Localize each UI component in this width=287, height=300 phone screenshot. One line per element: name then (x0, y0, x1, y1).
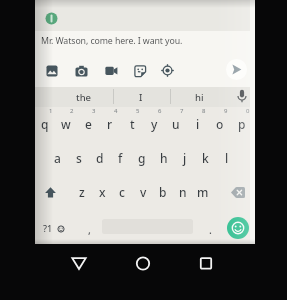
staticText: , (88, 223, 91, 237)
button[interactable]: o (209, 109, 231, 139)
button[interactable]: u (165, 109, 187, 139)
button[interactable] (68, 254, 90, 273)
button[interactable]: s (68, 143, 89, 173)
button[interactable] (132, 253, 154, 274)
staticText: 8 (202, 107, 206, 115)
staticText: e (85, 116, 92, 132)
staticText: i (196, 116, 200, 132)
staticText: 7 (180, 107, 184, 115)
button[interactable]: g (131, 143, 152, 173)
button[interactable] (44, 11, 59, 26)
staticText: v (140, 184, 147, 200)
button[interactable] (134, 65, 147, 78)
button[interactable] (195, 253, 217, 274)
staticText: 4 (114, 107, 118, 115)
staticText: z (79, 184, 85, 200)
staticText: ?1 (43, 222, 53, 234)
button[interactable]: l (216, 143, 237, 173)
staticText: q (41, 116, 49, 132)
staticText: s (76, 150, 82, 166)
button[interactable]: q (34, 109, 56, 139)
button[interactable]: t (121, 109, 143, 139)
button[interactable] (227, 217, 249, 239)
staticText: t (130, 116, 135, 132)
staticText: 9 (224, 107, 228, 115)
button[interactable]: the (56, 87, 112, 107)
button[interactable]: , (80, 219, 98, 241)
staticText: l (225, 150, 229, 166)
staticText: n (179, 184, 187, 200)
button[interactable]: w (55, 109, 77, 139)
staticText: b (159, 184, 167, 200)
staticText: m (197, 184, 209, 200)
staticText: j (183, 150, 187, 166)
button[interactable]: e (77, 109, 99, 139)
button[interactable] (46, 65, 58, 77)
staticText: f (118, 150, 123, 166)
button[interactable]: z (72, 177, 92, 207)
staticText: h (160, 150, 168, 166)
button[interactable] (36, 177, 65, 208)
button[interactable]: k (195, 143, 216, 173)
staticText: k (202, 150, 209, 166)
button[interactable]: Mr. Watson, come here. I want you. (41, 33, 211, 49)
staticText: r (107, 116, 113, 132)
button[interactable]: h (153, 143, 174, 173)
staticText: 3 (92, 107, 96, 115)
staticText: c (119, 184, 125, 200)
button[interactable]: c (112, 177, 132, 207)
button[interactable] (36, 212, 74, 242)
button[interactable] (236, 89, 248, 105)
button[interactable]: y (143, 109, 165, 139)
button[interactable]: m (193, 177, 213, 207)
staticText: 0 (246, 107, 250, 115)
button[interactable]: hi (171, 87, 227, 107)
staticText: p (238, 116, 246, 132)
button[interactable] (105, 66, 118, 76)
button[interactable]: i (187, 109, 209, 139)
button[interactable]: r (99, 109, 121, 139)
staticText: o (216, 116, 224, 132)
button[interactable]: I (113, 87, 169, 107)
staticText: hi (195, 91, 204, 104)
button[interactable]: d (89, 143, 110, 173)
button[interactable]: . (201, 219, 219, 241)
staticText: d (96, 150, 104, 166)
button[interactable]: a (47, 143, 68, 173)
button[interactable] (226, 59, 247, 80)
button[interactable]: p (231, 109, 253, 139)
button[interactable]: j (174, 143, 195, 173)
button[interactable] (75, 65, 88, 77)
button[interactable]: v (133, 177, 153, 207)
button[interactable]: x (92, 177, 112, 207)
staticText: 6 (158, 107, 162, 115)
staticText: g (138, 150, 146, 166)
staticText: 5 (136, 107, 140, 115)
button[interactable]: n (173, 177, 193, 207)
staticText: 1 (49, 107, 53, 115)
button[interactable] (161, 64, 174, 77)
staticText: w (61, 116, 71, 132)
button[interactable] (224, 177, 254, 208)
staticText: a (54, 150, 61, 166)
staticText: x (99, 184, 106, 200)
staticText: the (76, 91, 92, 104)
staticText: 2 (70, 107, 74, 115)
staticText: u (172, 116, 180, 132)
button[interactable]: b (153, 177, 173, 207)
staticText: Mr. Watson, come here. I want you. (41, 35, 183, 47)
staticText: I (139, 91, 143, 104)
staticText: y (151, 116, 158, 132)
staticText: . (209, 223, 212, 237)
button[interactable]: f (110, 143, 131, 173)
